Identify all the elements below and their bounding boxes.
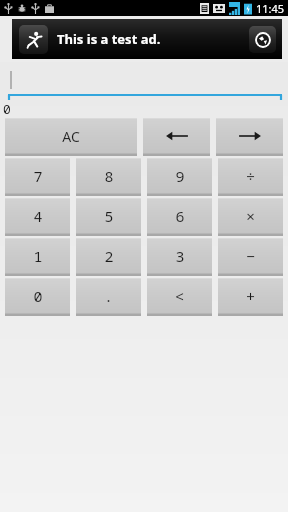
button[interactable]: 3 [147, 238, 212, 276]
button[interactable]: 1 [5, 238, 70, 276]
button[interactable]: Move cursor right [216, 118, 283, 156]
staticText: 3 [175, 246, 185, 266]
staticText: 0 [3, 100, 11, 118]
staticText: + [246, 286, 255, 306]
button[interactable]: + [218, 278, 283, 316]
staticText: − [246, 246, 255, 266]
staticText: 2 [104, 246, 114, 266]
button[interactable]: This is a test ad. [12, 19, 282, 59]
staticText: 6 [175, 206, 185, 226]
staticText: × [246, 206, 255, 226]
button[interactable]: 0 [5, 278, 70, 316]
staticText: . [106, 286, 111, 306]
staticText: < [175, 286, 184, 306]
staticText: 4 [33, 206, 43, 226]
button[interactable]: AC [5, 118, 137, 156]
button[interactable]: < [147, 278, 212, 316]
button[interactable]: − [218, 238, 283, 276]
button[interactable]: Open ad in browser [249, 26, 276, 53]
staticText: 9 [175, 166, 185, 186]
staticText: This is a test ad. [57, 30, 161, 48]
button[interactable]: 9 [147, 158, 212, 196]
button[interactable]: 5 [76, 198, 141, 236]
staticText: ÷ [246, 166, 255, 186]
staticText: 11:45 [256, 1, 285, 16]
button[interactable]: . [76, 278, 141, 316]
staticText: AC [62, 127, 80, 146]
button[interactable]: Move cursor left [143, 118, 210, 156]
button[interactable]: 8 [76, 158, 141, 196]
staticText: 8 [104, 166, 114, 186]
button[interactable]: ÷ [218, 158, 283, 196]
staticText: 0 [33, 286, 43, 306]
button[interactable]: 6 [147, 198, 212, 236]
button[interactable]: × [218, 198, 283, 236]
staticText: 1 [33, 246, 43, 266]
button[interactable]: 7 [5, 158, 70, 196]
staticText: 7 [33, 166, 43, 186]
button[interactable]: 2 [76, 238, 141, 276]
button[interactable]: 4 [5, 198, 70, 236]
staticText: 5 [104, 206, 114, 226]
